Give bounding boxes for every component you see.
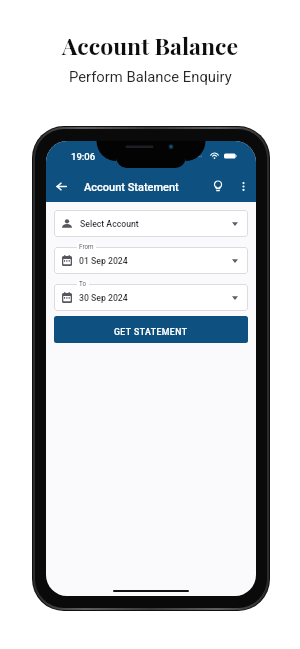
staticText: Account Statement — [84, 181, 179, 194]
staticText: Account Balance — [62, 30, 239, 61]
staticText: 30 Sep 2024 — [79, 293, 128, 303]
button[interactable]: 01 Sep 2024 — [54, 247, 248, 274]
button[interactable]: Select Account — [54, 210, 248, 237]
staticText: From — [79, 243, 94, 250]
button[interactable]: Tips — [208, 176, 228, 196]
staticText: 01 Sep 2024 — [79, 256, 128, 266]
button[interactable]: 30 Sep 2024 — [54, 284, 248, 311]
staticText: GET STATEMENT — [114, 327, 188, 337]
staticText: Select Account — [80, 219, 139, 229]
button[interactable]: Back — [51, 176, 72, 197]
button[interactable]: More options — [233, 176, 253, 196]
staticText: To — [79, 280, 87, 287]
staticText: Perform Balance Enquiry — [69, 68, 232, 85]
staticText: 19:06 — [71, 151, 96, 162]
button[interactable]: GET STATEMENT — [54, 316, 248, 343]
